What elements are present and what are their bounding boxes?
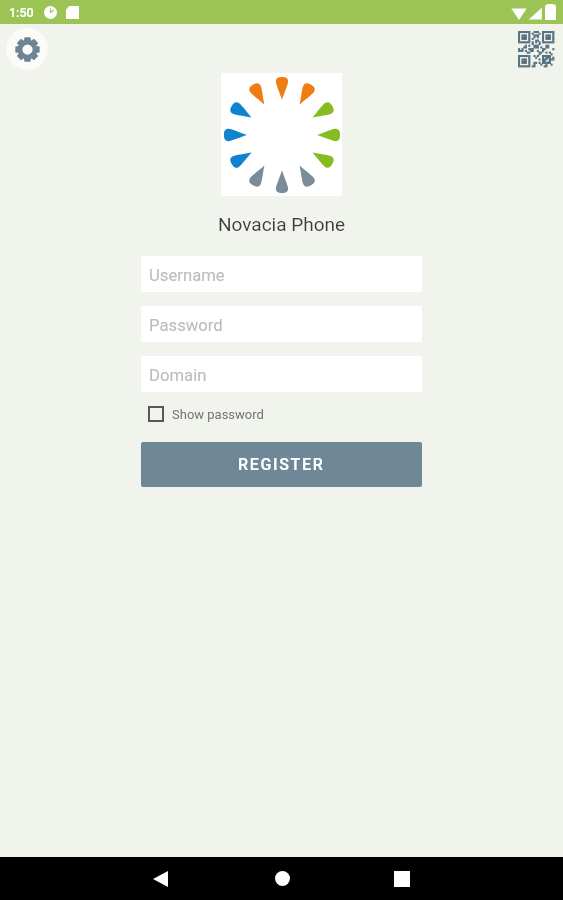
button[interactable]: REGISTER bbox=[141, 442, 422, 487]
button[interactable]: Username bbox=[141, 256, 422, 292]
button[interactable]: Show password bbox=[141, 402, 422, 426]
button[interactable]: Recent apps bbox=[372, 857, 432, 900]
button[interactable]: Home bbox=[252, 857, 312, 900]
staticText: Domain bbox=[149, 366, 207, 386]
button[interactable]: Settings bbox=[6, 28, 48, 70]
staticText: REGISTER bbox=[238, 455, 325, 474]
staticText: Username bbox=[149, 266, 225, 286]
button[interactable]: Password bbox=[141, 306, 422, 342]
button[interactable]: Scan QR code bbox=[515, 28, 557, 70]
staticText: Novacia Phone bbox=[218, 213, 346, 235]
button[interactable]: Domain bbox=[141, 356, 422, 392]
button[interactable]: Back bbox=[130, 857, 190, 900]
staticText: Show password bbox=[172, 407, 264, 422]
staticText: 1:50 bbox=[9, 5, 34, 20]
staticText: Password bbox=[149, 316, 223, 336]
